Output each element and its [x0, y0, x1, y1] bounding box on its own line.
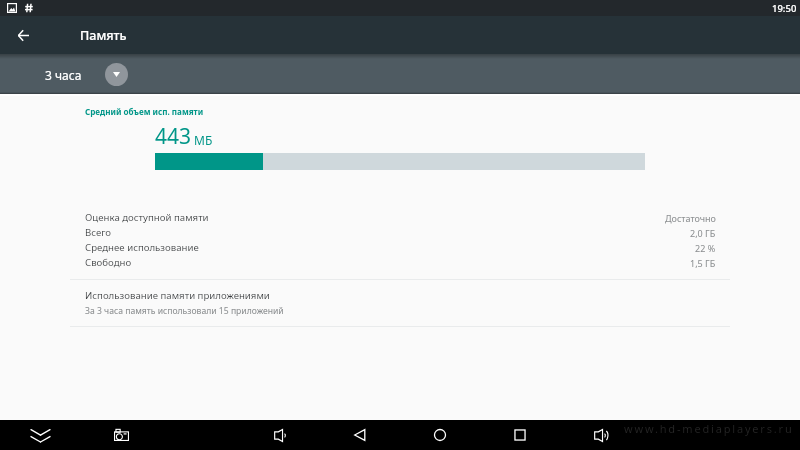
staticText: 1,5 ГБ: [690, 257, 716, 269]
staticText: 19:50: [772, 2, 797, 15]
staticText: www.hd-mediaplayers.ru: [624, 421, 794, 436]
staticText: Средний объем исп. памяти: [85, 106, 204, 117]
staticText: За 3 часа память использовали 15 приложе…: [85, 305, 284, 317]
staticText: 3 часа: [45, 67, 82, 83]
staticText: МБ: [194, 132, 213, 148]
button[interactable]: Volume down: [264, 420, 296, 450]
button[interactable]: Recents: [504, 420, 536, 450]
button[interactable]: Back: [4, 16, 42, 54]
button[interactable]: Home: [424, 420, 456, 450]
staticText: Среднее использование: [85, 241, 199, 254]
button[interactable]: Back: [344, 420, 376, 450]
button[interactable]: Screenshot: [105, 420, 137, 450]
button[interactable]: Hide: [24, 420, 56, 450]
button[interactable]: Всего: [0, 225, 800, 240]
staticText: 22 %: [695, 242, 716, 254]
staticText: Свободно: [85, 256, 132, 269]
staticText: 2,0 ГБ: [690, 227, 716, 239]
button[interactable]: Свободно: [0, 255, 800, 270]
button[interactable]: Среднее использование: [0, 240, 800, 255]
button[interactable]: 3 часа: [45, 63, 128, 86]
staticText: Использование памяти приложениями: [85, 289, 270, 302]
staticText: Оценка доступной памяти: [85, 211, 209, 224]
staticText: Память: [80, 27, 127, 44]
staticText: Достаточно: [665, 212, 716, 224]
staticText: Всего: [85, 226, 112, 239]
button[interactable]: Оценка доступной памяти: [0, 210, 800, 225]
staticText: 443: [155, 122, 192, 151]
button[interactable]: Volume up: [584, 420, 616, 450]
